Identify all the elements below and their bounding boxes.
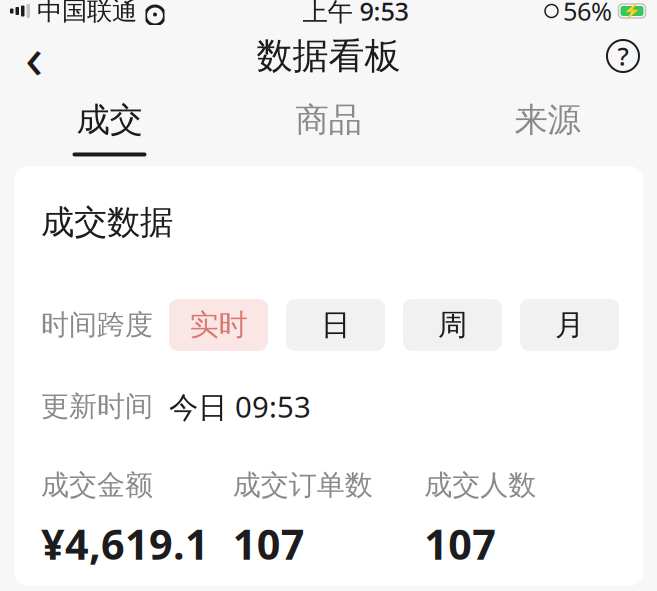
button[interactable]: 商品 (219, 90, 438, 166)
staticText: 商品 (295, 99, 361, 140)
staticText: 今日 09:53 (169, 387, 311, 426)
staticText: 成交 (76, 99, 142, 140)
staticText: 成交人数 (424, 468, 536, 502)
staticText: 成交数据 (41, 202, 173, 243)
staticText: ? (617, 39, 628, 73)
button[interactable]: 月 (520, 299, 619, 351)
staticText: ¥4,619.1 (41, 516, 209, 571)
staticText: 中国联通 (37, 0, 137, 26)
button[interactable]: 来源 (438, 90, 657, 166)
button[interactable]: 日 (286, 299, 385, 351)
button[interactable]: 周 (403, 299, 502, 351)
staticText: 107 (424, 516, 496, 571)
staticText: 成交订单数 (233, 468, 373, 502)
button[interactable]: Back (6, 28, 62, 84)
staticText: 上午 9:53 (302, 0, 408, 28)
staticText: 107 (233, 516, 305, 571)
staticText: 来源 (514, 99, 580, 140)
staticText: 56% (563, 0, 612, 28)
staticText: 日 (321, 307, 350, 343)
staticText: 实时 (189, 307, 247, 343)
button[interactable]: 成交 (0, 90, 219, 166)
staticText: 数据看板 (256, 34, 400, 78)
button[interactable]: Help (595, 28, 651, 84)
staticText: ‹ (25, 17, 43, 95)
staticText: 月 (555, 307, 584, 343)
staticText: 周 (438, 307, 467, 343)
staticText: 更新时间 (41, 389, 153, 424)
staticText: 时间跨度 (41, 308, 153, 342)
staticText: ⚡ (623, 3, 641, 19)
button[interactable]: 实时 (169, 299, 268, 351)
staticText: 成交金额 (41, 468, 153, 502)
